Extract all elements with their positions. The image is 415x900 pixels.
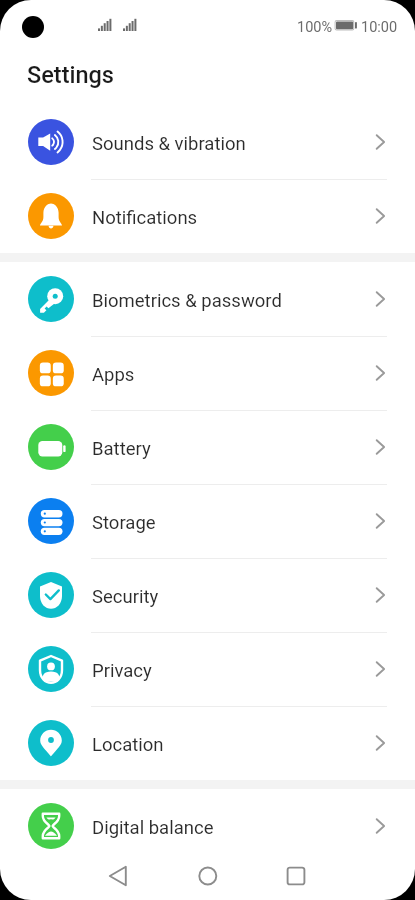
button[interactable]: Security xyxy=(0,558,415,632)
staticText: Sounds & vibration xyxy=(92,133,246,155)
staticText: Security xyxy=(92,586,159,608)
button[interactable]: Home xyxy=(180,852,236,900)
button[interactable]: Recents xyxy=(268,852,324,900)
button[interactable]: Biometrics & password xyxy=(0,262,415,336)
staticText: Biometrics & password xyxy=(92,290,282,312)
button[interactable]: Battery xyxy=(0,410,415,484)
staticText: 100% xyxy=(297,19,333,36)
staticText: Storage xyxy=(92,512,156,534)
button[interactable]: Sounds & vibration xyxy=(0,105,415,179)
staticText: Settings xyxy=(27,61,115,89)
staticText: Privacy xyxy=(92,660,152,682)
staticText: Digital balance xyxy=(92,817,214,839)
button[interactable]: Location xyxy=(0,706,415,780)
button[interactable]: Back xyxy=(90,852,146,900)
staticText: Notifications xyxy=(92,207,198,229)
button[interactable]: Apps xyxy=(0,336,415,410)
staticText: Battery xyxy=(92,438,151,460)
staticText: Apps xyxy=(92,364,135,386)
button[interactable]: Digital balance xyxy=(0,789,415,863)
staticText: Location xyxy=(92,734,164,756)
button[interactable]: Privacy xyxy=(0,632,415,706)
button[interactable]: Storage xyxy=(0,484,415,558)
staticText: 10:00 xyxy=(361,19,398,36)
button[interactable]: Notifications xyxy=(0,179,415,253)
